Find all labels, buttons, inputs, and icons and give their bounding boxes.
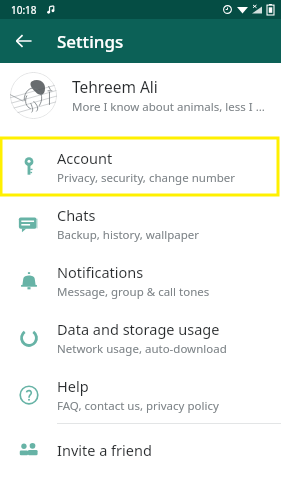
staticText: 10:18	[11, 3, 37, 17]
staticText: Help	[57, 376, 89, 396]
staticText: More I know about animals, less I like…	[72, 99, 267, 115]
button[interactable]: Data and storage usage	[0, 309, 281, 366]
staticText: Tehreem Ali	[72, 76, 158, 97]
staticText: Backup, history, wallpaper	[57, 227, 200, 243]
staticText: Message, group & call tones	[57, 284, 210, 300]
staticText: Network usage, auto-download	[57, 341, 227, 357]
button[interactable]: Invite a friend	[0, 424, 281, 476]
button[interactable]: Help	[0, 366, 281, 423]
button[interactable]: Chats	[0, 195, 281, 252]
button[interactable]: Back	[8, 25, 40, 57]
staticText: Invite a friend	[57, 440, 152, 460]
staticText: Privacy, security, change number	[57, 170, 235, 186]
button[interactable]: Tehreem Ali	[0, 63, 281, 128]
staticText: Chats	[57, 205, 96, 225]
staticText: FAQ, contact us, privacy policy	[57, 398, 219, 414]
staticText: Notifications	[57, 262, 144, 282]
button[interactable]: Notifications	[0, 252, 281, 309]
staticText: Data and storage usage	[57, 319, 220, 339]
staticText: Settings	[57, 30, 124, 53]
staticText: Account	[57, 148, 113, 168]
button[interactable]: Account	[0, 138, 281, 195]
